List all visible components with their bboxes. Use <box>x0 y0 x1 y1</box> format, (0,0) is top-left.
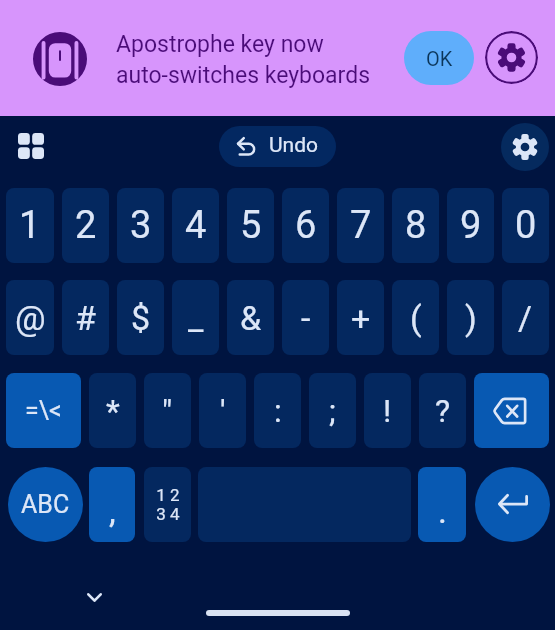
staticText: 2 <box>75 203 97 248</box>
button[interactable]: 8 <box>392 188 439 263</box>
button[interactable]: 7 <box>337 188 384 263</box>
staticText: , <box>109 491 116 531</box>
button[interactable]: & <box>227 280 274 355</box>
button[interactable]: =\< <box>6 373 81 448</box>
button[interactable]: : <box>254 373 301 448</box>
button[interactable]: / <box>502 280 549 355</box>
staticText: ? <box>435 392 451 430</box>
staticText: Apostrophe key now auto-switches keyboar… <box>116 31 371 89</box>
button[interactable]: @ <box>6 280 54 355</box>
staticText: OK <box>426 47 453 70</box>
staticText: : <box>274 392 282 430</box>
button[interactable]: Hide keyboard <box>74 577 114 617</box>
staticText: 1 2 3 4 <box>156 485 180 524</box>
button[interactable]: ! <box>364 373 411 448</box>
button[interactable]: 1 <box>6 188 54 263</box>
staticText: ! <box>383 392 392 430</box>
staticText: 0 <box>515 203 537 248</box>
staticText: 4 <box>185 203 207 248</box>
button[interactable]: OK <box>404 31 474 85</box>
staticText: * <box>106 392 120 430</box>
button[interactable]: + <box>337 280 384 355</box>
staticText: 1 <box>19 203 41 248</box>
button[interactable]: 0 <box>502 188 549 263</box>
staticText: ) <box>465 298 477 338</box>
staticText: & <box>240 298 262 338</box>
button[interactable]: Backspace <box>474 373 549 448</box>
staticText: ABC <box>21 490 70 519</box>
staticText: $ <box>131 298 151 338</box>
button[interactable]: 5 <box>227 188 274 263</box>
staticText: 3 <box>130 203 152 248</box>
button[interactable]: ABC <box>8 467 83 542</box>
staticText: Undo <box>269 133 319 158</box>
staticText: @ <box>15 298 46 338</box>
button[interactable]: $ <box>117 280 164 355</box>
button[interactable]: Enter <box>475 467 550 542</box>
button[interactable]: ? <box>419 373 466 448</box>
staticText: ( <box>410 298 422 338</box>
button[interactable]: 4 <box>172 188 219 263</box>
staticText: _ <box>188 298 204 338</box>
button[interactable]: ; <box>309 373 356 448</box>
staticText: ; <box>329 392 336 430</box>
button[interactable]: * <box>89 373 136 448</box>
button[interactable]: ) <box>447 280 494 355</box>
staticText: 7 <box>350 203 372 248</box>
button[interactable]: ' <box>199 373 246 448</box>
button[interactable]: 3 <box>117 188 164 263</box>
staticText: + <box>351 298 371 338</box>
staticText: " <box>162 392 173 430</box>
button[interactable]: Settings <box>485 31 538 84</box>
button[interactable]: 2 <box>62 188 109 263</box>
button[interactable]: # <box>62 280 109 355</box>
staticText: / <box>518 298 533 338</box>
staticText: # <box>75 298 96 338</box>
button[interactable]: _ <box>172 280 219 355</box>
button[interactable]: " <box>144 373 191 448</box>
staticText: 6 <box>295 203 317 248</box>
button[interactable]: 6 <box>282 188 329 263</box>
button[interactable]: Apps <box>8 123 53 168</box>
staticText: . <box>438 491 447 531</box>
button[interactable]: 1 2 3 4 <box>144 467 191 542</box>
staticText: ' <box>220 392 226 430</box>
button[interactable]: Keyboard settings <box>501 123 549 171</box>
button[interactable]: Undo <box>219 126 336 167</box>
button[interactable]: - <box>282 280 329 355</box>
staticText: 9 <box>460 203 482 248</box>
button[interactable]: ( <box>392 280 439 355</box>
staticText: - <box>301 298 311 338</box>
staticText: 5 <box>240 203 262 248</box>
button[interactable]: . <box>418 467 466 542</box>
button[interactable]: 9 <box>447 188 494 263</box>
staticText: 8 <box>405 203 427 248</box>
button[interactable]: , <box>89 467 135 542</box>
staticText: =\< <box>25 396 62 425</box>
